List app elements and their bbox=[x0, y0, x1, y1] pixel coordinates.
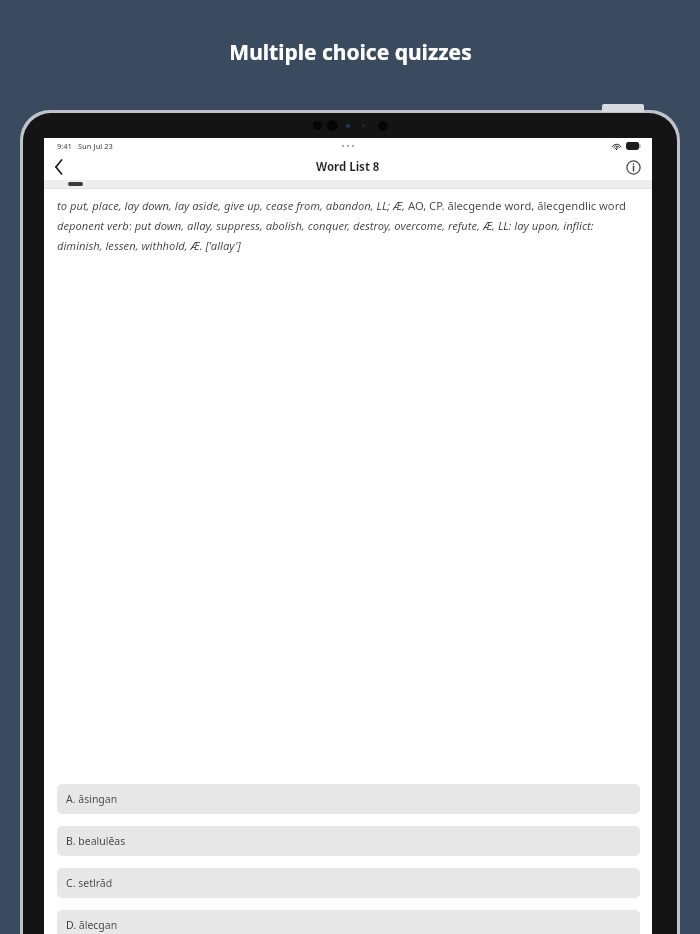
staticText: Multiple choice quizzes bbox=[229, 38, 472, 67]
button[interactable]: C. setlrād bbox=[57, 868, 640, 898]
button[interactable]: Back bbox=[44, 153, 74, 180]
button[interactable]: B. bealulēas bbox=[57, 826, 640, 856]
staticText: D. ālecgan bbox=[66, 918, 118, 932]
button[interactable]: D. ālecgan bbox=[57, 910, 640, 934]
staticText: Word List 8 bbox=[316, 159, 380, 175]
button[interactable]: Information bbox=[620, 154, 646, 180]
staticText: A. āsingan bbox=[66, 792, 118, 806]
button[interactable]: A. āsingan bbox=[57, 784, 640, 814]
staticText: Sun Jul 23 bbox=[78, 141, 113, 151]
staticText: 9:41 bbox=[57, 141, 72, 151]
staticText: to put, place, lay down, lay aside, give… bbox=[57, 198, 640, 253]
staticText: C. setlrād bbox=[66, 876, 113, 890]
staticText: B. bealulēas bbox=[66, 834, 126, 848]
